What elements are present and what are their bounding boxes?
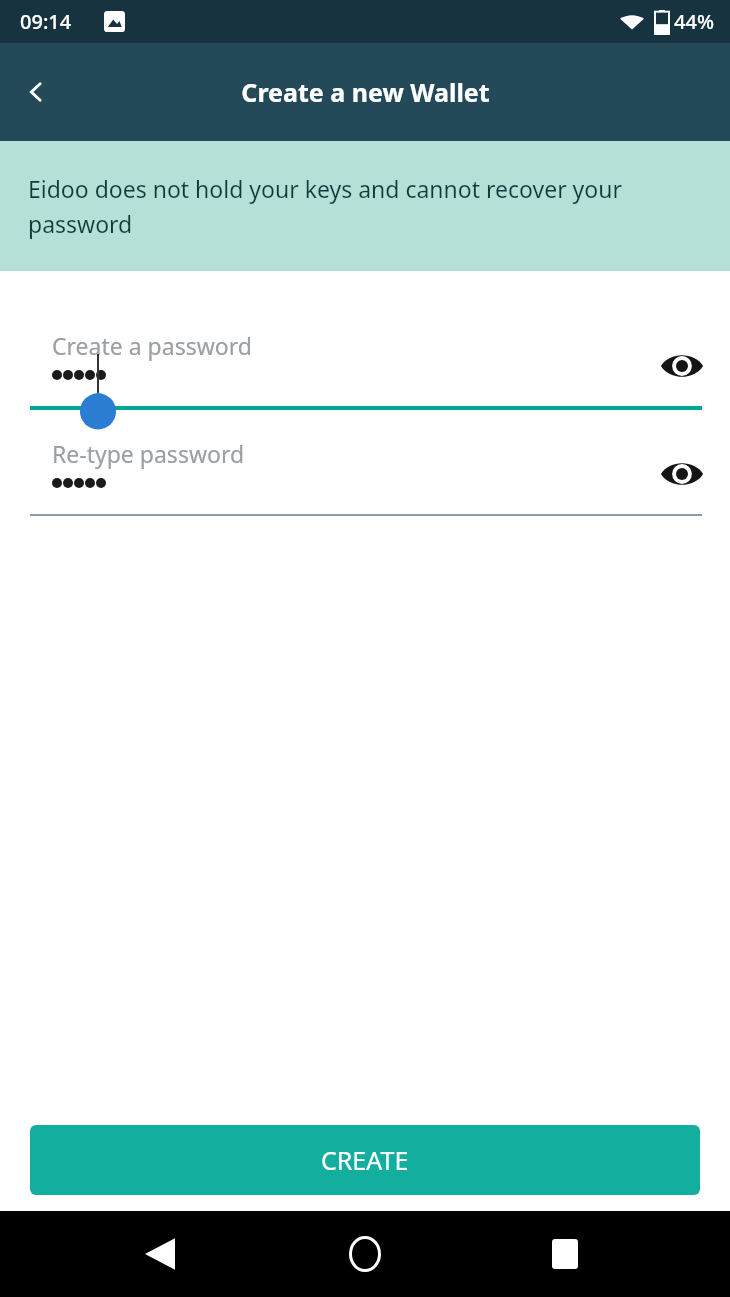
button[interactable]: Recent apps <box>525 1214 605 1294</box>
button[interactable]: Back <box>120 1214 200 1294</box>
staticText: Eidoo does not hold your keys and cannot… <box>28 173 670 240</box>
staticText: CREATE <box>321 1143 409 1177</box>
button[interactable]: Re-type password <box>0 438 730 516</box>
button[interactable]: Show password <box>654 446 710 502</box>
staticText: Create a password <box>52 330 252 361</box>
staticText: 09:14 <box>20 8 72 35</box>
button[interactable]: CREATE <box>30 1125 700 1195</box>
staticText: Re-type password <box>52 438 245 469</box>
button[interactable]: Home <box>325 1214 405 1294</box>
staticText: Create a new Wallet <box>241 75 490 109</box>
button[interactable]: Show password <box>654 338 710 394</box>
button[interactable]: Back <box>8 64 64 120</box>
button[interactable]: Create a password <box>0 330 730 410</box>
staticText: 44% <box>674 8 714 35</box>
